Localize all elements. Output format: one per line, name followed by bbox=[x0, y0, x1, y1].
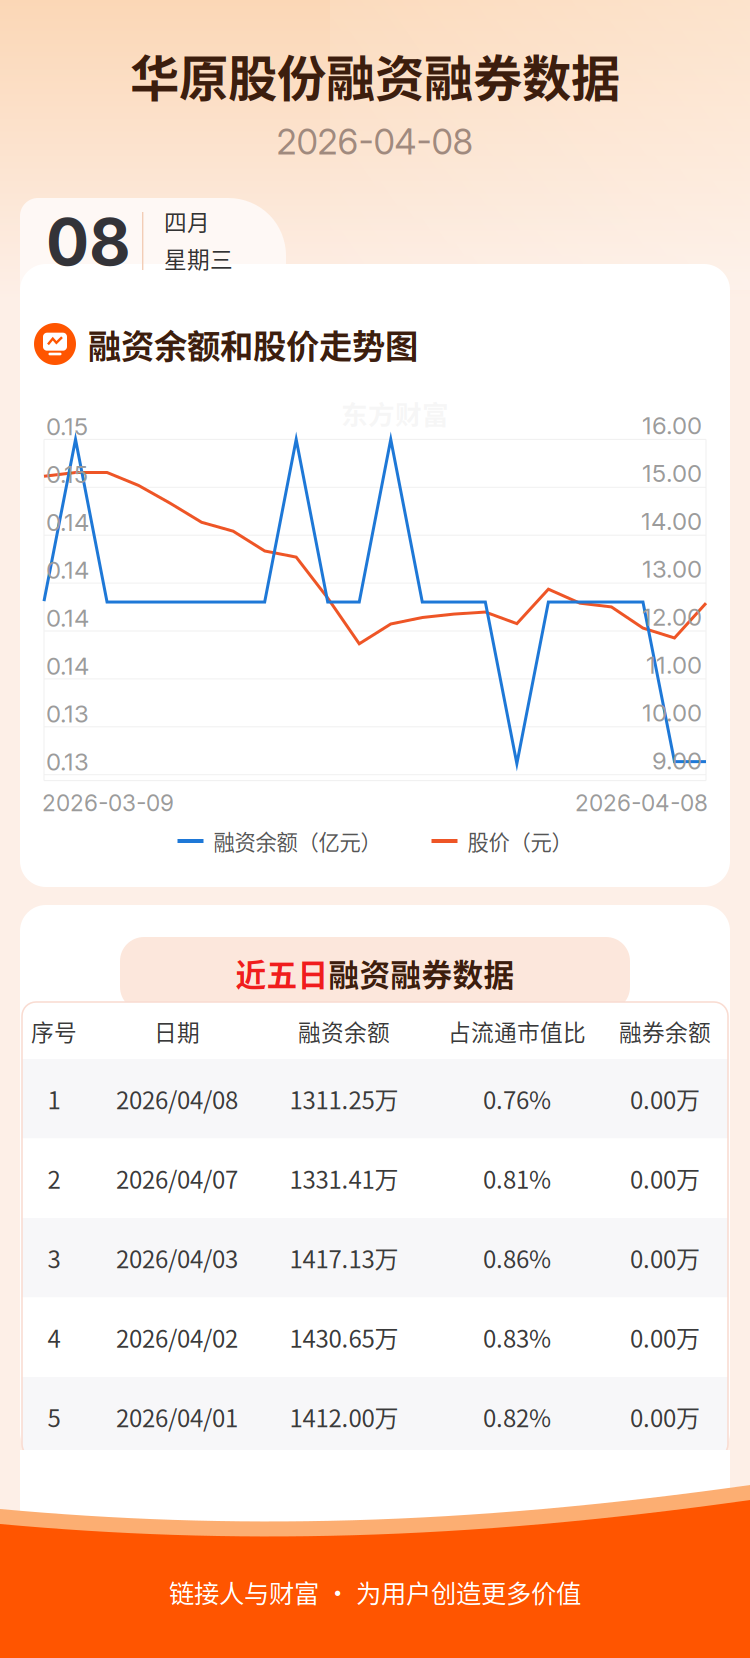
staticText: 四月 bbox=[164, 205, 210, 237]
staticText: 2026/04/03 bbox=[116, 1240, 238, 1275]
staticText: 2026/04/08 bbox=[116, 1081, 238, 1116]
staticText: 0.15 bbox=[46, 460, 88, 489]
staticText: 13.00 bbox=[642, 555, 702, 584]
staticText: 0.81% bbox=[483, 1161, 551, 1196]
staticText: 0.14 bbox=[46, 651, 89, 680]
staticText: 2026-04-08 bbox=[276, 121, 473, 163]
staticText: 2026-04-08 bbox=[575, 789, 708, 817]
staticText: 1311.25万 bbox=[289, 1081, 398, 1116]
staticText: 0.00万 bbox=[630, 1240, 700, 1275]
staticText: 融资余额（亿元） bbox=[213, 826, 381, 856]
staticText: 1430.65万 bbox=[289, 1320, 398, 1355]
staticText: 15.00 bbox=[642, 459, 702, 488]
staticText: 0.15 bbox=[46, 412, 88, 441]
staticText: 2026/04/02 bbox=[116, 1320, 238, 1355]
staticText: 股价（元） bbox=[467, 826, 572, 856]
staticText: 12.00 bbox=[642, 602, 702, 631]
staticText: 2026-03-09 bbox=[42, 789, 174, 817]
staticText: 0.00万 bbox=[630, 1161, 700, 1196]
staticText: 星期三 bbox=[164, 242, 233, 274]
staticText: 0.82% bbox=[483, 1399, 551, 1434]
staticText: 融资余额和股价走势图 bbox=[88, 320, 418, 368]
staticText: 10.00 bbox=[642, 698, 702, 727]
staticText: 序号 bbox=[31, 1015, 77, 1047]
staticText: 16.00 bbox=[642, 411, 702, 440]
staticText: 1417.13万 bbox=[289, 1240, 398, 1275]
staticText: 融券余额 bbox=[619, 1015, 711, 1047]
staticText: 0.14 bbox=[46, 603, 89, 632]
staticText: 日期 bbox=[154, 1015, 200, 1047]
staticText: 11.00 bbox=[646, 650, 702, 679]
staticText: 3 bbox=[47, 1240, 60, 1275]
staticText: 1412.00万 bbox=[289, 1399, 398, 1434]
staticText: 华原股份融资融券数据 bbox=[130, 39, 620, 111]
staticText: 融资融券数据 bbox=[328, 951, 514, 995]
staticText: 1331.41万 bbox=[289, 1161, 398, 1196]
staticText: 1 bbox=[47, 1081, 60, 1116]
staticText: 0.14 bbox=[46, 508, 89, 537]
staticText: 0.86% bbox=[483, 1240, 551, 1275]
staticText: 14.00 bbox=[641, 507, 702, 536]
staticText: 2026/04/07 bbox=[116, 1161, 238, 1196]
staticText: 占流通市值比 bbox=[448, 1015, 586, 1047]
staticText: 0.00万 bbox=[630, 1081, 700, 1116]
staticText: 0.00万 bbox=[630, 1399, 700, 1434]
staticText: 5 bbox=[47, 1399, 60, 1434]
staticText: 9.00 bbox=[652, 746, 702, 775]
staticText: 链接人与财富 · 为用户创造更多价值 bbox=[169, 1574, 581, 1610]
staticText: 0.00万 bbox=[630, 1320, 700, 1355]
staticText: 0.14 bbox=[46, 556, 89, 585]
staticText: 近五日 bbox=[235, 951, 328, 995]
staticText: 东方财富 bbox=[341, 394, 449, 432]
staticText: 0.13 bbox=[46, 699, 89, 728]
staticText: 融资余额 bbox=[298, 1015, 390, 1047]
staticText: 4 bbox=[47, 1320, 60, 1355]
staticText: 2 bbox=[47, 1161, 60, 1196]
staticText: 08 bbox=[46, 203, 131, 281]
staticText: 0.13 bbox=[46, 747, 89, 776]
staticText: 0.83% bbox=[483, 1320, 551, 1355]
staticText: 0.76% bbox=[483, 1081, 551, 1116]
staticText: 2026/04/01 bbox=[116, 1399, 238, 1434]
